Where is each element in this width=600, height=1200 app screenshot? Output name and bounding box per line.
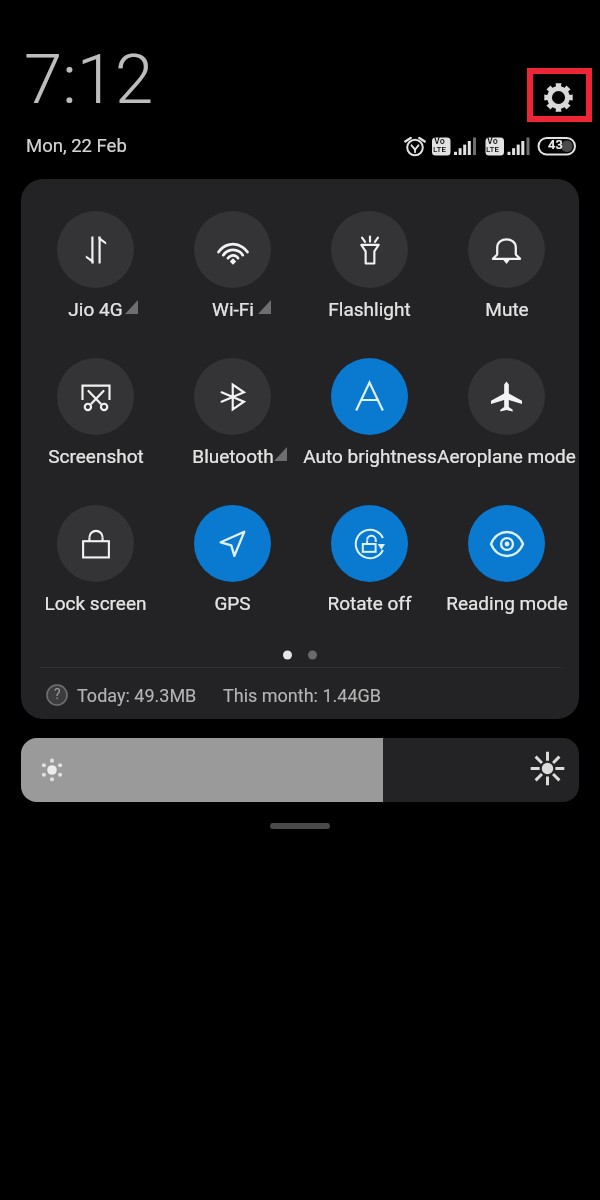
button[interactable]: Wi-Fi [164, 211, 301, 320]
staticText: This month: 1.44GB [223, 685, 381, 706]
button[interactable]: Screenshot [27, 358, 164, 467]
staticText: Mon, 22 Feb [26, 135, 127, 157]
staticText: Lock screen [44, 592, 147, 614]
staticText: Vo [434, 136, 445, 147]
staticText: Bluetooth [192, 445, 274, 467]
staticText: Reading mode [446, 592, 568, 614]
staticText: Vo [487, 136, 498, 147]
staticText: LTE [433, 145, 446, 154]
staticText: Auto brightness [303, 445, 437, 467]
staticText: GPS [214, 592, 251, 614]
staticText: Rotate off [327, 592, 412, 614]
button[interactable]: Brightness [21, 738, 579, 802]
button[interactable]: Reading mode [438, 505, 575, 614]
staticText: Jio 4G [68, 298, 123, 320]
button[interactable]: Rotate off [301, 505, 438, 614]
button[interactable]: Bluetooth [164, 358, 301, 467]
staticText: LTE [486, 145, 499, 154]
staticText: 7:12 [24, 39, 154, 120]
staticText: ? [54, 686, 61, 702]
button[interactable]: GPS [164, 505, 301, 614]
staticText: Screenshot [48, 445, 144, 467]
button[interactable]: Jio 4G [27, 211, 164, 320]
button[interactable]: Mute [438, 211, 575, 320]
staticText: Today: 49.3MB [77, 685, 197, 706]
button[interactable]: Flashlight [301, 211, 438, 320]
staticText: Flashlight [328, 298, 411, 320]
button[interactable]: Auto brightness [301, 358, 438, 467]
button[interactable]: ? [46, 675, 579, 715]
button[interactable]: Settings [527, 68, 592, 122]
staticText: Aeroplane mode [437, 445, 576, 467]
staticText: 43 [548, 137, 563, 152]
staticText: Wi-Fi [212, 298, 254, 320]
button[interactable]: Aeroplane mode [438, 358, 575, 467]
staticText: Mute [485, 298, 529, 320]
button[interactable]: Lock screen [27, 505, 164, 614]
